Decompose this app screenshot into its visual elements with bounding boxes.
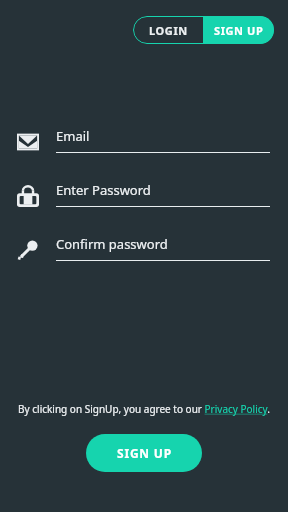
button[interactable]: Email [56, 122, 270, 153]
other: Password [17, 185, 39, 207]
staticText: SIGN UP [214, 23, 264, 38]
button[interactable]: Confirm password [56, 230, 270, 261]
button[interactable]: SIGN UP [203, 16, 274, 44]
staticText: SIGN UP [117, 445, 172, 461]
staticText: Enter Password [56, 181, 151, 199]
staticText: By clicking on SignUp, you agree to our … [18, 402, 270, 416]
staticText: Email [56, 127, 90, 145]
staticText: Confirm password [56, 235, 168, 253]
other: Email [17, 131, 39, 153]
other: Confirm password [17, 239, 39, 261]
button[interactable]: LOGIN [133, 16, 203, 44]
staticText: LOGIN [149, 23, 188, 38]
button[interactable]: Enter Password [56, 176, 270, 207]
button[interactable]: By clicking on SignUp, you agree to our … [0, 402, 288, 416]
button[interactable]: SIGN UP [86, 434, 202, 472]
